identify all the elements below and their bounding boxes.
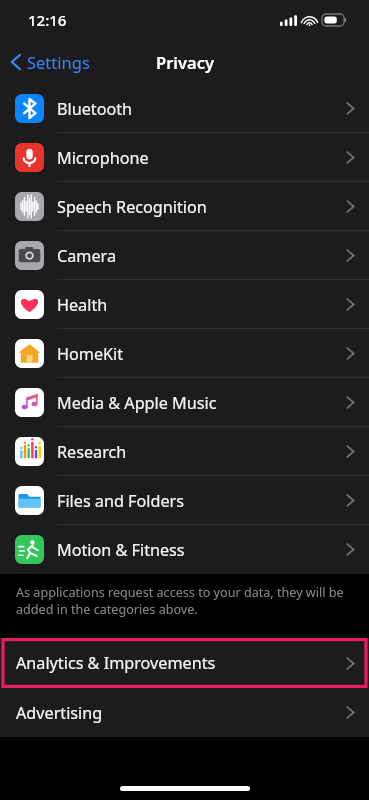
staticText: Camera <box>57 245 117 267</box>
staticText: Motion & Fitness <box>57 539 185 561</box>
button[interactable]: Files and Folders <box>0 476 369 525</box>
staticText: Settings <box>27 51 90 73</box>
staticText: 12:16 <box>28 10 67 30</box>
button[interactable]: Research <box>0 427 369 476</box>
staticText: Privacy <box>156 51 214 73</box>
staticText: Research <box>57 441 127 463</box>
button[interactable]: Camera <box>0 231 369 280</box>
button[interactable]: Advertising <box>0 688 369 737</box>
staticText: Bluetooth <box>57 98 133 120</box>
button[interactable]: Health <box>0 280 369 329</box>
button[interactable]: Motion & Fitness <box>0 525 369 574</box>
staticText: Microphone <box>57 147 149 169</box>
staticText: Media & Apple Music <box>57 392 217 414</box>
staticText: Speech Recognition <box>57 196 207 218</box>
button[interactable]: Analytics & Improvements <box>0 638 369 688</box>
button[interactable]: Media & Apple Music <box>0 378 369 427</box>
button[interactable]: Microphone <box>0 133 369 182</box>
staticText: HomeKit <box>57 343 124 365</box>
button[interactable]: Settings <box>8 47 92 77</box>
staticText: Files and Folders <box>57 490 184 512</box>
button[interactable]: HomeKit <box>0 329 369 378</box>
button[interactable]: Bluetooth <box>0 84 369 133</box>
staticText: As applications request access to your d… <box>16 584 351 618</box>
button[interactable]: Speech Recognition <box>0 182 369 231</box>
staticText: Analytics & Improvements <box>16 652 216 674</box>
staticText: Advertising <box>16 702 103 724</box>
staticText: Health <box>57 294 108 316</box>
